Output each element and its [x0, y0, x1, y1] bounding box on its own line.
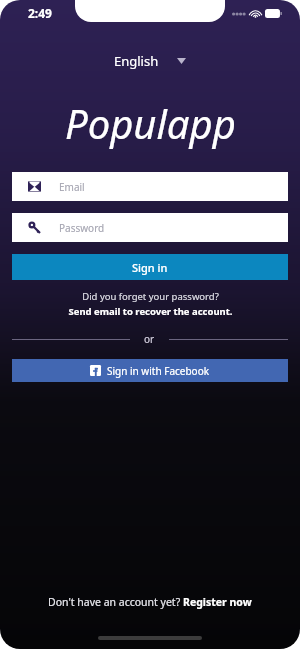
- staticText: Password: [59, 221, 105, 235]
- button[interactable]: Password: [12, 213, 288, 242]
- button[interactable]: Sign in with Facebook: [12, 359, 288, 382]
- staticText: Sign in: [132, 260, 168, 275]
- button[interactable]: Sign in: [12, 254, 288, 280]
- button[interactable]: Don't have an account yet?: [36, 589, 264, 615]
- button[interactable]: Email: [12, 172, 288, 201]
- staticText: English: [114, 52, 159, 70]
- staticText: Email: [59, 180, 85, 194]
- staticText: Populapp: [65, 96, 236, 150]
- button[interactable]: English: [106, 48, 194, 74]
- staticText: Sign in with Facebook: [107, 364, 210, 378]
- staticText: Did you forget your password?: [82, 290, 219, 303]
- staticText: Don't have an account yet?: [48, 595, 183, 609]
- staticText: Send email to recover the account.: [68, 305, 233, 318]
- staticText: Register now: [183, 595, 252, 609]
- button[interactable]: Send email to recover the account.: [68, 305, 233, 318]
- other: Email: [28, 180, 41, 193]
- staticText: or: [144, 332, 155, 346]
- staticText: 2:49: [28, 5, 52, 21]
- other: Password: [28, 221, 41, 234]
